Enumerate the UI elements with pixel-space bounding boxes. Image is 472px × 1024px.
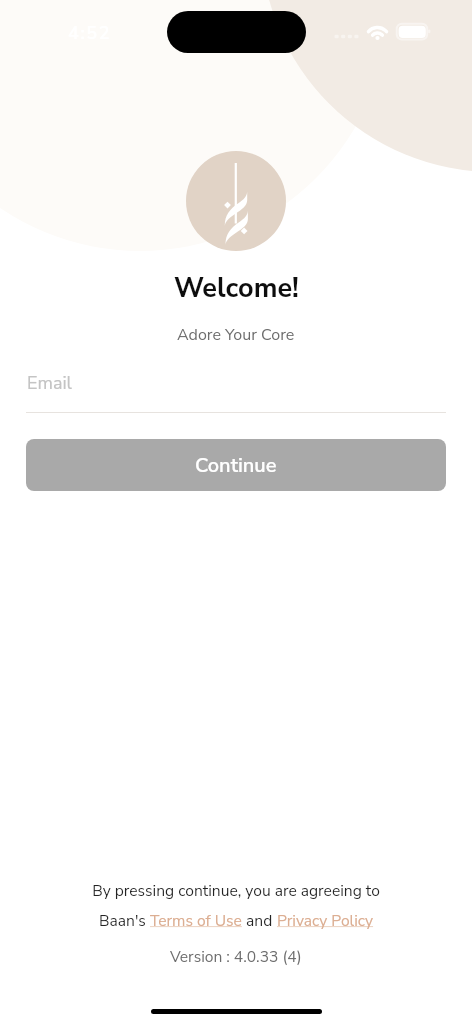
staticText: Adore Your Core — [177, 324, 295, 346]
button[interactable]: Email — [26, 368, 446, 413]
staticText: and — [242, 910, 277, 931]
staticText: Welcome! — [174, 270, 299, 307]
other: Baan logo — [186, 151, 286, 251]
staticText: By pressing continue, you are agreeing t… — [92, 880, 380, 901]
staticText: Continue — [195, 452, 277, 479]
staticText: Baan's — [99, 910, 150, 931]
button[interactable]: Terms of Use — [150, 910, 242, 931]
staticText: Version : 4.0.33 (4) — [170, 946, 302, 967]
staticText: Privacy Policy — [277, 910, 374, 931]
button[interactable]: Privacy Policy — [277, 910, 374, 931]
button[interactable]: Continue — [26, 439, 446, 491]
staticText: Email — [27, 371, 72, 396]
staticText: Terms of Use — [150, 910, 242, 931]
